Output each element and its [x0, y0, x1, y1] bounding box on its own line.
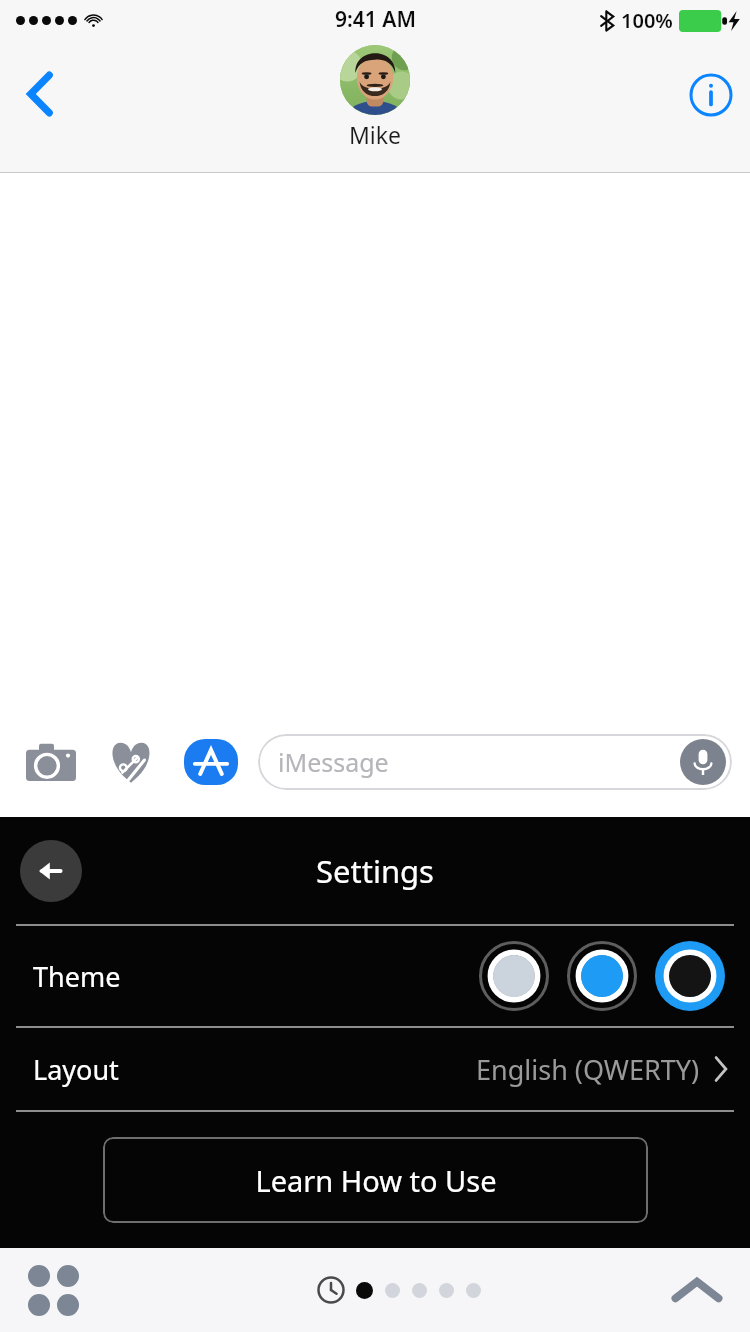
staticText: iMessage [278, 745, 389, 779]
staticText: English (QWERTY) [476, 1051, 700, 1088]
staticText: Learn How to Use [255, 1161, 497, 1200]
button[interactable]: Theme colour [564, 938, 640, 1014]
staticText: 100% [621, 7, 673, 34]
staticText: Settings [316, 850, 434, 892]
button[interactable]: Camera [22, 733, 80, 791]
button[interactable]: Learn How to Use [103, 1137, 648, 1223]
button[interactable]: Mike [340, 45, 410, 150]
button[interactable]: Theme colour [652, 938, 728, 1014]
button[interactable]: Expand [662, 1255, 732, 1325]
button[interactable]: Details [680, 64, 742, 126]
button[interactable]: Theme [0, 926, 750, 1026]
button[interactable]: Dictate [680, 739, 726, 785]
staticText: Theme [33, 958, 121, 995]
button[interactable]: Layout [0, 1028, 750, 1110]
staticText: Layout [33, 1051, 119, 1088]
staticText: Mike [349, 119, 402, 150]
button[interactable]: Back [8, 62, 72, 126]
button[interactable]: Back [20, 840, 82, 902]
button[interactable]: App Store [182, 733, 240, 791]
button[interactable]: Recents [314, 1273, 348, 1307]
button[interactable]: Apps [18, 1255, 88, 1325]
staticText: 9:41 AM [335, 5, 416, 34]
button[interactable]: Digital Touch [102, 733, 160, 791]
button[interactable]: Theme colour [476, 938, 552, 1014]
button[interactable]: iMessage [258, 734, 732, 790]
